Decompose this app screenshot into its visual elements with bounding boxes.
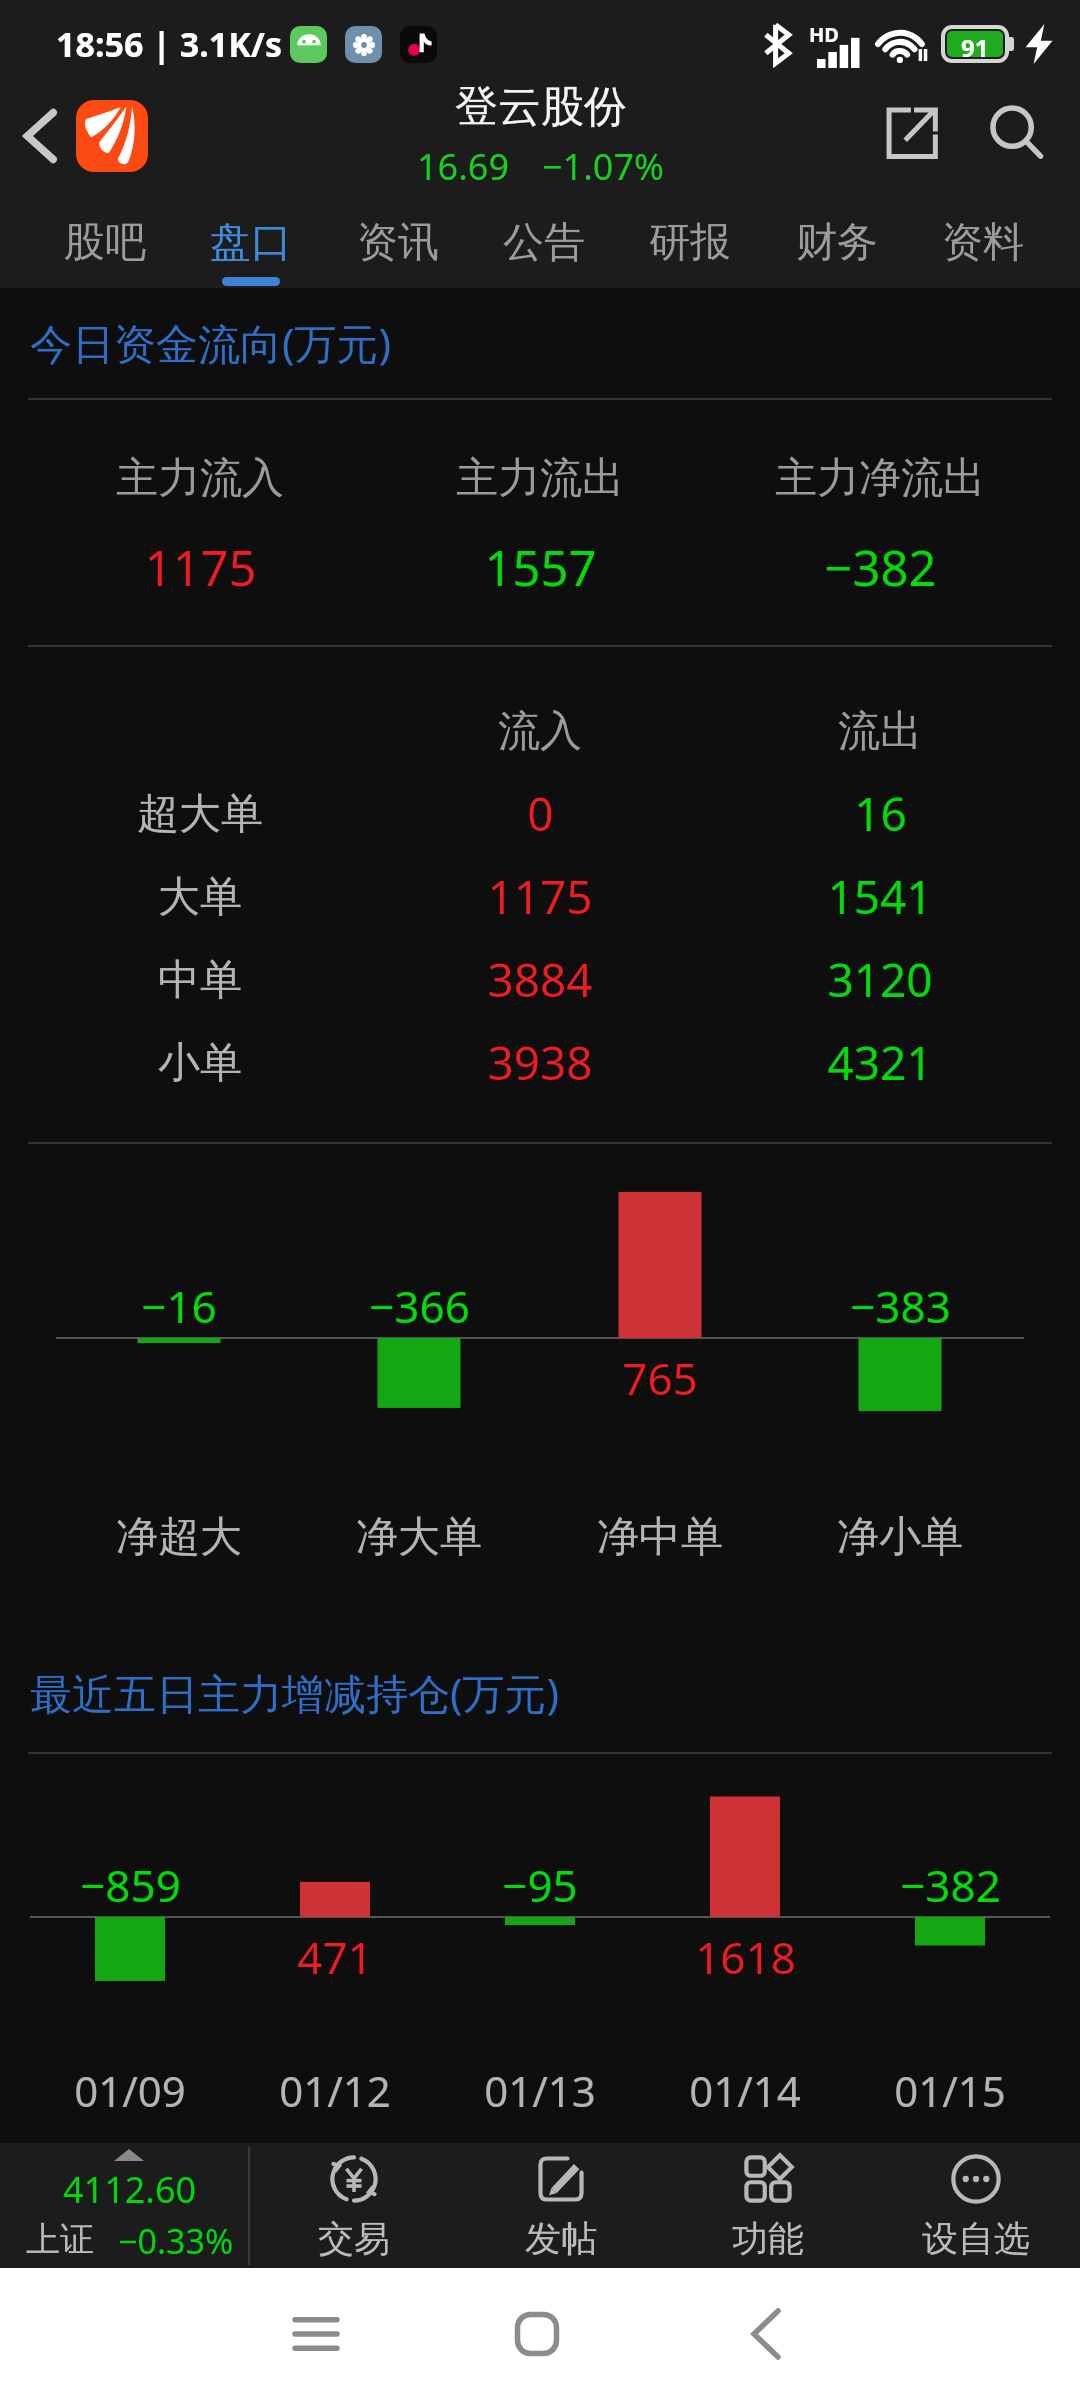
button[interactable]: App logo [76, 100, 148, 172]
staticText: 主力流出 [456, 452, 624, 505]
staticText: 中单 [158, 954, 242, 1007]
staticText: 净超大 [116, 1511, 242, 1564]
staticText: 财务 [796, 217, 878, 269]
staticText: 小单 [158, 1037, 242, 1090]
staticText: 0 [527, 782, 554, 845]
button[interactable]: 功能 [664, 2143, 872, 2269]
staticText: 净小单 [837, 1511, 963, 1564]
staticText: 3884 [487, 948, 593, 1011]
staticText: 流入 [498, 705, 582, 758]
staticText: 16 [854, 782, 907, 845]
button[interactable]: Shanghai Composite index [0, 2143, 248, 2269]
button[interactable]: Back [722, 2290, 810, 2378]
staticText: 研报 [649, 217, 731, 269]
staticText: 盘口 [210, 217, 292, 269]
staticText: −0.33% [118, 2218, 234, 2264]
staticText: −366 [369, 1276, 470, 1336]
staticText: −859 [80, 1855, 181, 1915]
staticText: 今日资金流向(万元) [30, 314, 392, 371]
button[interactable]: 资料 [930, 196, 1036, 286]
staticText: 4321 [827, 1031, 933, 1094]
button[interactable]: Search [970, 88, 1060, 178]
staticText: 1541 [827, 865, 933, 928]
staticText: 1618 [695, 1927, 796, 1987]
staticText: 3120 [827, 948, 933, 1011]
button[interactable]: 公告 [491, 196, 597, 286]
button[interactable]: 设自选 [872, 2143, 1080, 2269]
button[interactable]: 财务 [784, 196, 890, 286]
staticText: 1175 [144, 534, 257, 601]
staticText: −1.07% [542, 142, 664, 188]
button[interactable]: Recents [272, 2290, 360, 2378]
button[interactable]: Back [8, 92, 72, 180]
staticText: 1175 [487, 865, 593, 928]
button[interactable]: 股吧 [52, 196, 158, 286]
staticText: 01/12 [279, 2062, 391, 2119]
staticText: 765 [622, 1348, 698, 1408]
staticText: 01/15 [894, 2062, 1006, 2119]
staticText: 最近五日主力增减持仓(万元) [30, 1664, 560, 1721]
staticText: 上证 [26, 2218, 94, 2261]
staticText: 1557 [484, 534, 597, 601]
staticText: 设自选 [922, 2216, 1030, 2261]
staticText: 主力净流出 [775, 452, 985, 505]
button[interactable]: 盘口 [198, 196, 304, 286]
staticText: 4112.60 [63, 2165, 197, 2214]
button[interactable]: 研报 [637, 196, 743, 286]
button[interactable]: Share [868, 88, 958, 178]
staticText: 流出 [838, 705, 922, 758]
staticText: 资料 [942, 217, 1024, 269]
staticText: 01/14 [689, 2062, 801, 2119]
button[interactable]: 发帖 [457, 2143, 664, 2269]
staticText: 3938 [487, 1031, 593, 1094]
staticText: 91 [961, 31, 989, 57]
staticText: −383 [850, 1276, 951, 1336]
staticText: 发帖 [525, 2216, 597, 2261]
staticText: 01/13 [484, 2062, 596, 2119]
staticText: HD [809, 21, 839, 48]
staticText: 471 [297, 1927, 373, 1987]
staticText: 大单 [158, 871, 242, 924]
button[interactable]: Home [493, 2290, 581, 2378]
staticText: 资讯 [357, 217, 439, 269]
button[interactable]: 资讯 [345, 196, 451, 286]
staticText: 功能 [732, 2216, 804, 2261]
staticText: 净中单 [597, 1511, 723, 1564]
staticText: 股吧 [64, 217, 146, 269]
staticText: −382 [900, 1855, 1001, 1915]
staticText: 净大单 [356, 1511, 482, 1564]
button[interactable]: 交易 [250, 2143, 457, 2269]
staticText: 交易 [318, 2216, 390, 2261]
staticText: 登云股份 [455, 80, 627, 134]
staticText: 18:56 | 3.1K/s [56, 21, 282, 67]
staticText: −16 [141, 1276, 217, 1336]
staticText: 01/09 [74, 2062, 186, 2119]
staticText: 公告 [503, 217, 585, 269]
staticText: −382 [824, 534, 937, 601]
staticText: −95 [502, 1855, 578, 1915]
staticText: 超大单 [137, 788, 263, 841]
staticText: 16.69 [417, 142, 510, 188]
staticText: 主力流入 [116, 452, 284, 505]
